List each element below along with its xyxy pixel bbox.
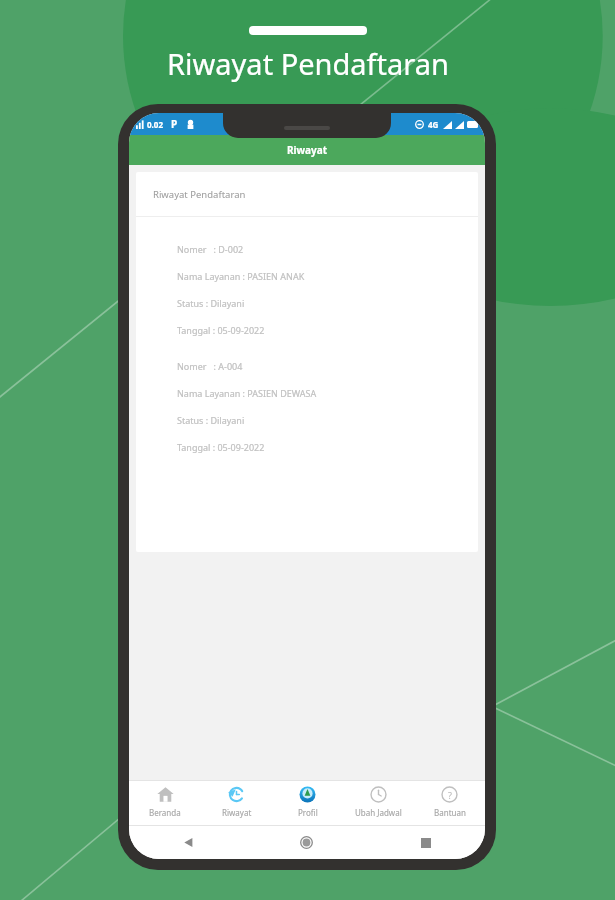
staticText: Nomer : D-002 bbox=[177, 243, 244, 255]
staticText: Nomer : A-004 bbox=[177, 360, 243, 372]
staticText: Nama Layanan : PASIEN DEWASA bbox=[177, 387, 317, 399]
staticText: Profil bbox=[298, 807, 318, 818]
staticText: Beranda bbox=[149, 807, 181, 818]
staticText: Status : Dilayani bbox=[177, 414, 245, 426]
button[interactable]: Profil bbox=[272, 781, 343, 825]
staticText: Riwayat bbox=[222, 807, 252, 818]
staticText: Riwayat bbox=[287, 143, 328, 157]
staticText: Tanggal : 05-09-2022 bbox=[177, 324, 265, 336]
button[interactable]: Beranda bbox=[129, 781, 201, 825]
staticText: ? bbox=[448, 789, 452, 801]
button[interactable]: ? bbox=[414, 781, 485, 825]
staticText: Ubah Jadwal bbox=[355, 807, 402, 818]
staticText: Nama Layanan : PASIEN ANAK bbox=[177, 270, 305, 282]
staticText: Bantuan bbox=[434, 807, 466, 818]
staticText: 0.02 bbox=[147, 119, 163, 130]
staticText: Riwayat Pendaftaran bbox=[167, 44, 449, 83]
staticText: Riwayat Pendaftaran bbox=[153, 188, 246, 201]
staticText: P bbox=[171, 117, 178, 131]
staticText: Status : Dilayani bbox=[177, 297, 245, 309]
button[interactable]: Home bbox=[247, 826, 366, 859]
staticText: 4G bbox=[428, 119, 439, 130]
button[interactable]: Recents bbox=[366, 826, 485, 859]
button[interactable]: Ubah Jadwal bbox=[343, 781, 414, 825]
button[interactable]: Back bbox=[129, 826, 247, 859]
staticText: Tanggal : 05-09-2022 bbox=[177, 441, 265, 453]
button[interactable]: Riwayat bbox=[201, 781, 272, 825]
